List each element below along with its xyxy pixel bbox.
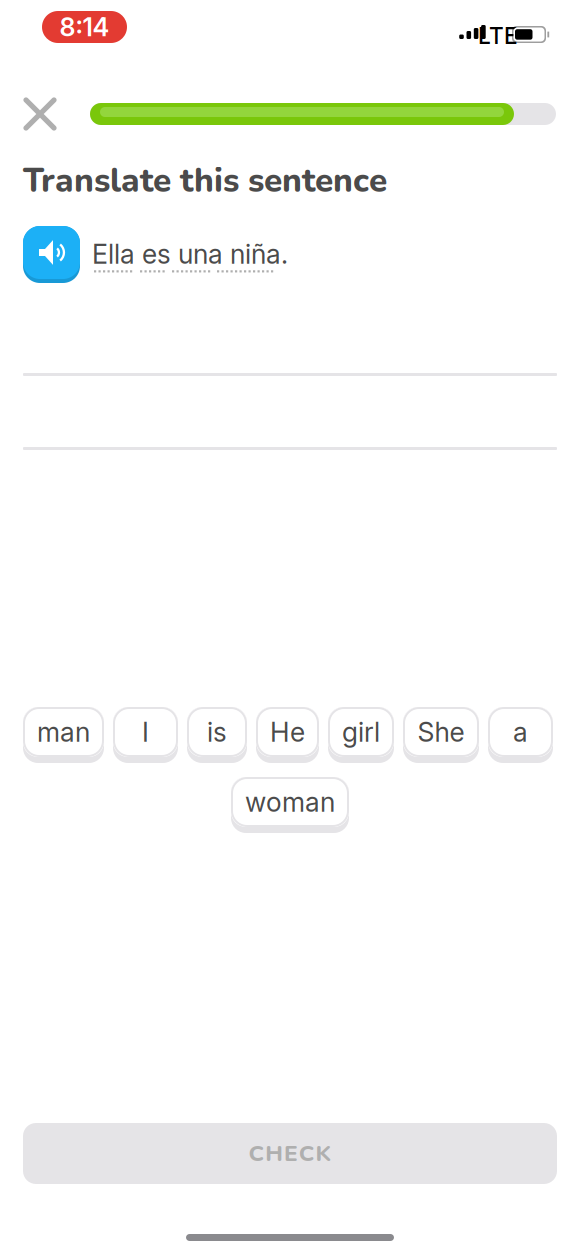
staticText: girl [342,716,380,748]
staticText: man [37,716,90,748]
button[interactable]: I [113,707,178,763]
staticText: He [270,716,305,748]
staticText: Ella es una niña. [92,238,288,270]
button[interactable]: Close [23,97,57,131]
button[interactable]: He [256,707,319,763]
button[interactable]: Play audio [23,226,80,283]
staticText: She [417,716,464,748]
staticText: I [142,716,149,748]
staticText: is [207,716,227,748]
staticText: Translate this sentence [23,158,387,203]
button[interactable]: woman [231,777,349,833]
button[interactable]: girl [328,707,394,763]
button[interactable]: a [488,707,553,763]
button[interactable]: is [187,707,247,763]
button[interactable]: CHECK [23,1123,557,1184]
button[interactable]: man [23,707,104,763]
staticText: woman [245,786,335,818]
staticText: CHECK [248,1138,332,1169]
staticText: 8:14 [59,12,109,42]
staticText: LTE [478,22,518,49]
staticText: a [513,716,528,748]
button[interactable]: She [403,707,479,763]
